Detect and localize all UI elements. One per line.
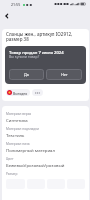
staticText: Вы купили товар? <box>9 54 40 59</box>
staticText: Синтетика <box>6 117 28 123</box>
button[interactable]: More badges <box>32 89 43 96</box>
staticText: Цвет <box>6 157 14 161</box>
staticText: Товар продан 7 июля 2024 <box>9 50 64 56</box>
staticText: Выгодно <box>13 91 28 95</box>
staticText: Полимерный материал <box>6 147 56 153</box>
staticText: Материал низа <box>6 142 30 146</box>
staticText: Материал подкладки <box>6 127 39 131</box>
staticText: Материал верха <box>6 112 31 116</box>
staticText: Размер <box>6 172 18 176</box>
staticText: Текстиль <box>6 132 25 138</box>
staticText: Сланцы жен., артикул IO2912, размер 38 <box>6 31 79 43</box>
staticText: Бежевый/розовый/розовый <box>6 162 65 168</box>
button[interactable]: Да <box>9 69 44 80</box>
button[interactable]: Нет <box>46 69 82 80</box>
staticText: Нет <box>61 72 68 77</box>
button[interactable]: Выгодно <box>6 89 30 96</box>
staticText: 21:55 <box>11 2 21 7</box>
button[interactable]: Back <box>1 10 13 22</box>
staticText: Да <box>24 72 29 77</box>
